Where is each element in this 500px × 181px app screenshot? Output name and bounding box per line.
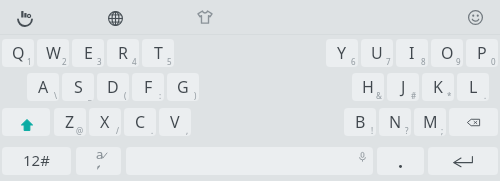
staticText: G bbox=[177, 76, 189, 98]
staticText: ! bbox=[371, 125, 374, 136]
button[interactable]: W bbox=[37, 39, 69, 67]
staticText: X bbox=[100, 111, 110, 133]
staticText: @ bbox=[76, 125, 84, 136]
staticText: O bbox=[441, 42, 454, 64]
staticText: I bbox=[409, 42, 415, 64]
button[interactable]: Backspace bbox=[449, 108, 498, 136]
staticText: D bbox=[107, 76, 119, 98]
staticText: A bbox=[38, 76, 49, 98]
button[interactable]: Change language bbox=[99, 2, 131, 34]
button[interactable]: Space bbox=[126, 147, 373, 175]
staticText: 5 bbox=[167, 56, 172, 67]
staticText: 7 bbox=[386, 56, 391, 67]
staticText: Y bbox=[337, 42, 347, 64]
button[interactable]: G bbox=[167, 73, 199, 101]
button[interactable]: O bbox=[431, 39, 463, 67]
button[interactable]: Shift bbox=[2, 108, 50, 136]
staticText: * bbox=[447, 90, 452, 101]
staticText: T bbox=[154, 42, 163, 64]
button[interactable]: B bbox=[344, 108, 376, 136]
button[interactable]: E bbox=[72, 39, 104, 67]
staticText: L bbox=[469, 76, 478, 98]
staticText: # bbox=[411, 90, 417, 101]
staticText: V bbox=[170, 111, 180, 133]
staticText: & bbox=[376, 90, 382, 101]
button[interactable]: D bbox=[97, 73, 129, 101]
button[interactable]: I bbox=[396, 39, 428, 67]
staticText: . bbox=[151, 125, 154, 136]
staticText: M bbox=[423, 111, 438, 133]
staticText: J bbox=[401, 76, 406, 98]
staticText: 3 bbox=[97, 56, 102, 67]
button[interactable]: Period bbox=[377, 147, 424, 175]
staticText: ; bbox=[441, 125, 444, 136]
staticText: / bbox=[116, 125, 119, 136]
button[interactable]: L bbox=[457, 73, 489, 101]
staticText: \ bbox=[54, 90, 57, 101]
staticText: _ bbox=[88, 90, 92, 101]
button[interactable]: P bbox=[466, 39, 498, 67]
staticText: S bbox=[74, 76, 83, 98]
button[interactable]: K bbox=[422, 73, 454, 101]
button[interactable]: N bbox=[379, 108, 411, 136]
staticText: W bbox=[46, 42, 61, 64]
staticText: E bbox=[84, 42, 93, 64]
staticText: : bbox=[159, 90, 162, 101]
button[interactable]: V bbox=[159, 108, 191, 136]
button[interactable]: Z bbox=[54, 108, 86, 136]
staticText: ( bbox=[124, 90, 127, 101]
staticText: P bbox=[477, 42, 487, 64]
staticText: H bbox=[362, 76, 374, 98]
staticText: Q bbox=[12, 42, 25, 64]
button[interactable]: X bbox=[89, 108, 121, 136]
staticText: N bbox=[389, 111, 402, 133]
staticText: Z bbox=[65, 111, 75, 133]
staticText: C bbox=[135, 111, 146, 133]
button[interactable]: M bbox=[414, 108, 446, 136]
staticText: 0 bbox=[491, 56, 496, 67]
staticText: 1 bbox=[27, 56, 32, 67]
button[interactable]: Enter bbox=[428, 147, 498, 175]
staticText: F bbox=[144, 76, 153, 98]
button[interactable]: S bbox=[62, 73, 94, 101]
staticText: 6 bbox=[351, 56, 356, 67]
staticText: a bbox=[96, 147, 104, 163]
button[interactable]: Language switch bbox=[76, 147, 121, 175]
button[interactable]: C bbox=[124, 108, 156, 136]
button[interactable]: Q bbox=[2, 39, 34, 67]
button[interactable]: J bbox=[387, 73, 419, 101]
staticText: ) bbox=[194, 90, 197, 101]
button[interactable]: Themes bbox=[189, 1, 221, 33]
button[interactable]: A bbox=[27, 73, 59, 101]
staticText: 12# bbox=[23, 150, 50, 170]
staticText: ? bbox=[405, 125, 409, 136]
button[interactable]: T bbox=[142, 39, 174, 67]
staticText: B bbox=[355, 111, 366, 133]
staticText: 2 bbox=[62, 56, 67, 67]
button[interactable]: R bbox=[107, 39, 139, 67]
button[interactable]: 12# bbox=[2, 147, 71, 175]
staticText: 9 bbox=[456, 56, 461, 67]
button[interactable]: H bbox=[352, 73, 384, 101]
button[interactable]: Keyboard menu bbox=[9, 2, 41, 34]
staticText: . bbox=[484, 90, 487, 101]
staticText: , bbox=[186, 125, 189, 136]
button[interactable]: Emoji bbox=[459, 1, 491, 33]
staticText: K bbox=[433, 76, 443, 98]
staticText: 4 bbox=[132, 56, 137, 67]
staticText: U bbox=[371, 42, 383, 64]
button[interactable]: Y bbox=[326, 39, 358, 67]
button[interactable]: F bbox=[132, 73, 164, 101]
button[interactable]: U bbox=[361, 39, 393, 67]
staticText: R bbox=[118, 42, 128, 64]
staticText: 8 bbox=[421, 56, 426, 67]
